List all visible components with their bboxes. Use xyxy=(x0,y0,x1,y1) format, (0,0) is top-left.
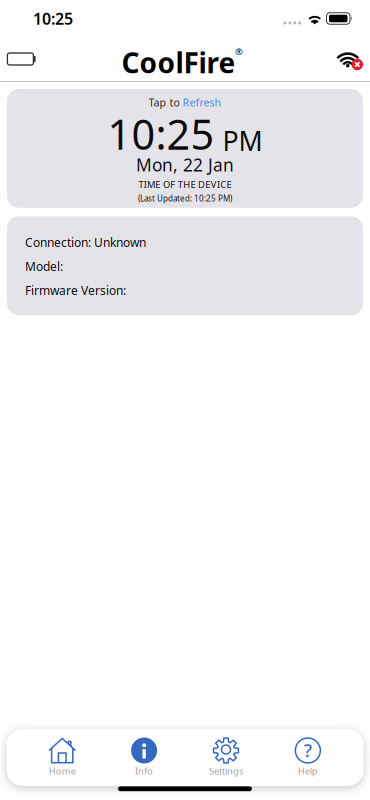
staticText: TIME OF THE DEVICE xyxy=(138,178,232,190)
staticText: PM xyxy=(222,123,262,158)
staticText: Mon, 22 Jan xyxy=(136,153,234,176)
staticText: ? xyxy=(304,738,312,762)
staticText: Home xyxy=(49,765,76,777)
staticText: Refresh xyxy=(182,95,221,109)
staticText: Help xyxy=(298,765,318,777)
button[interactable]: ? xyxy=(267,729,349,785)
staticText: Settings xyxy=(209,765,243,777)
staticText: Model: xyxy=(25,258,63,274)
staticText: 10:25 xyxy=(107,106,214,161)
staticText: Connection: Unknown xyxy=(25,234,146,250)
staticText: CoolFire xyxy=(121,44,235,81)
button[interactable]: Tap to xyxy=(7,89,363,208)
staticText: Tap to xyxy=(148,95,179,109)
staticText: (Last Updated: 10:25 PM) xyxy=(138,193,232,204)
button[interactable]: Home xyxy=(21,729,103,785)
button[interactable]: Settings xyxy=(185,729,267,785)
staticText: ® xyxy=(235,45,243,58)
button[interactable]: Info xyxy=(103,729,185,785)
staticText: Firmware Version: xyxy=(25,282,126,298)
staticText: Info xyxy=(135,765,153,777)
button[interactable]: Device battery xyxy=(0,44,46,74)
staticText: 10:25 xyxy=(33,8,73,29)
button[interactable]: Connection status xyxy=(326,42,370,76)
